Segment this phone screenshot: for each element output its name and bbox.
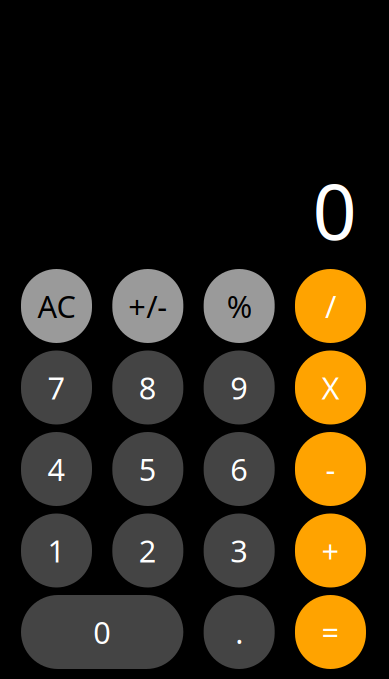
staticText: 3 xyxy=(230,530,248,571)
staticText: 6 xyxy=(230,449,248,489)
button[interactable]: 1 xyxy=(21,513,92,587)
staticText: 9 xyxy=(230,367,248,408)
staticText: . xyxy=(235,612,243,652)
staticText: + xyxy=(321,530,339,571)
staticText: AC xyxy=(37,286,75,326)
button[interactable]: % xyxy=(204,269,275,343)
button[interactable]: - xyxy=(295,432,366,506)
button[interactable]: 3 xyxy=(204,513,275,587)
button[interactable]: = xyxy=(295,595,366,669)
button[interactable]: 2 xyxy=(112,513,183,587)
staticText: 0 xyxy=(93,612,111,652)
button[interactable]: 6 xyxy=(204,432,275,506)
staticText: X xyxy=(321,367,339,408)
staticText: +/- xyxy=(128,286,167,326)
button[interactable]: / xyxy=(295,269,366,343)
staticText: 5 xyxy=(139,449,157,489)
button[interactable]: AC xyxy=(21,269,92,343)
staticText: 8 xyxy=(139,367,157,408)
button[interactable]: . xyxy=(204,595,275,669)
staticText: 2 xyxy=(139,530,157,571)
button[interactable]: + xyxy=(295,513,366,587)
button[interactable]: 9 xyxy=(204,350,275,424)
staticText: - xyxy=(325,449,335,489)
button[interactable]: X xyxy=(295,350,366,424)
staticText: 4 xyxy=(47,449,65,489)
staticText: 1 xyxy=(47,530,65,571)
staticText: = xyxy=(321,612,339,652)
staticText: 0 xyxy=(312,158,356,261)
staticText: % xyxy=(227,286,252,326)
button[interactable]: +/- xyxy=(112,269,183,343)
button[interactable]: 4 xyxy=(21,432,92,506)
button[interactable]: 7 xyxy=(21,350,92,424)
button[interactable]: 5 xyxy=(112,432,183,506)
staticText: / xyxy=(325,286,336,326)
button[interactable]: 8 xyxy=(112,350,183,424)
button[interactable]: 0 xyxy=(21,595,183,669)
staticText: 7 xyxy=(47,367,65,408)
